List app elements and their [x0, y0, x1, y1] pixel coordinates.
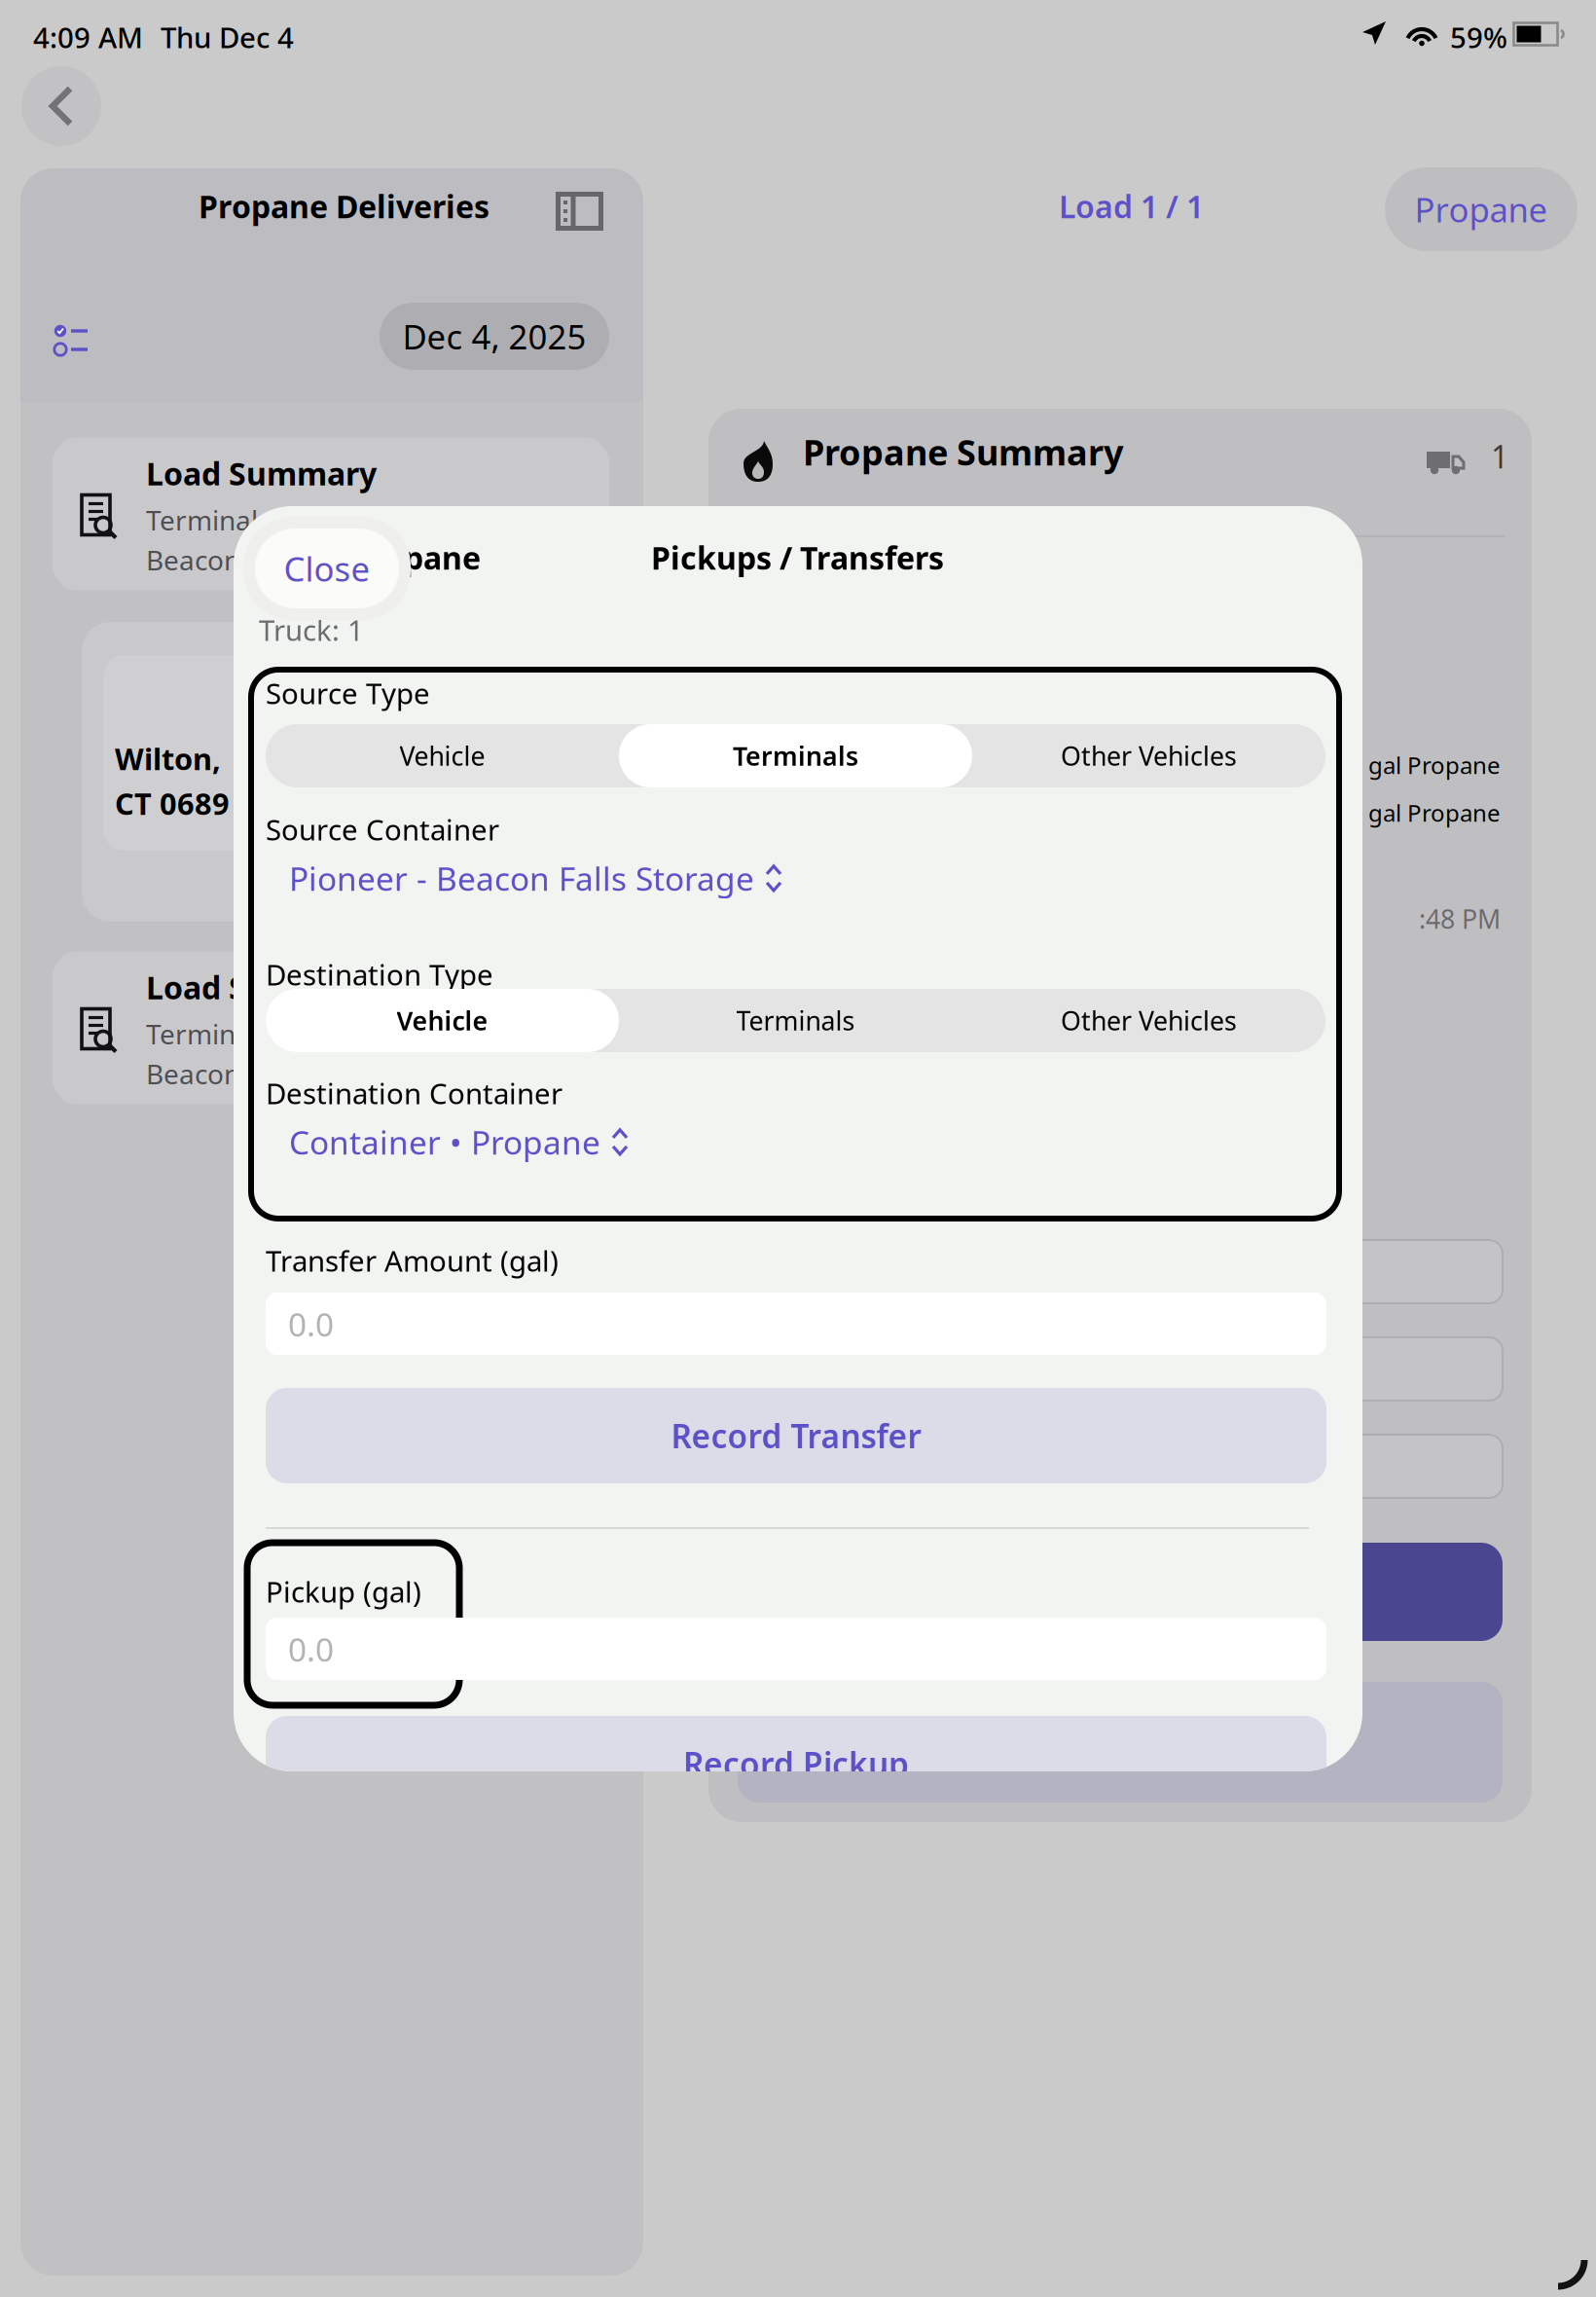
staticText: 59%: [1450, 18, 1507, 56]
staticText: Other Vehicles: [1061, 739, 1237, 773]
staticText: Container • Propane: [289, 1120, 600, 1164]
button[interactable]: Record Pickup: [266, 1716, 1326, 1811]
staticText: Record Transfer: [671, 1414, 921, 1457]
button[interactable]: Container • Propane: [289, 1120, 629, 1164]
button[interactable]: Other Vehicles: [972, 724, 1325, 787]
staticText: Propane Summary: [803, 429, 1124, 475]
staticText: Source Container: [266, 810, 499, 848]
staticText: Beacon: [146, 542, 240, 578]
staticText: Load Summary: [146, 453, 377, 494]
button[interactable]: Propane: [1385, 167, 1578, 251]
staticText: 1: [1491, 436, 1508, 477]
button[interactable]: Vehicle: [266, 989, 619, 1052]
button[interactable]: Other Vehicles: [972, 989, 1325, 1052]
button[interactable]: Load S: [53, 951, 609, 1104]
button[interactable]: Vehicle: [266, 724, 619, 787]
button[interactable]: Load Summary: [53, 438, 609, 590]
button[interactable]: Close: [255, 529, 399, 608]
staticText: Beacon: [146, 1056, 240, 1092]
staticText: Terminals: [733, 739, 858, 773]
staticText: gal Propane: [1368, 750, 1501, 781]
staticText: 0.0: [288, 1302, 334, 1346]
staticText: Propane Deliveries: [199, 186, 490, 227]
staticText: Other Vehicles: [1061, 1003, 1237, 1038]
staticText: gal Propane: [1368, 797, 1501, 828]
button[interactable]: Dec 4, 2025: [380, 303, 609, 370]
staticText: Load 1 / 1: [1059, 186, 1204, 227]
staticText: Terminals: [736, 1003, 855, 1038]
staticText: Terminal: B: [146, 502, 290, 538]
staticText: 4:09 AM: [33, 18, 143, 56]
button[interactable]: Terminals: [619, 989, 972, 1052]
button[interactable]: Pioneer - Beacon Falls Storage: [289, 857, 782, 900]
staticText: Thu Dec 4: [161, 18, 294, 56]
staticText: Close: [284, 546, 370, 591]
staticText: Load S: [146, 967, 246, 1008]
staticText: Source Type: [266, 674, 430, 712]
staticText: CT 0689: [115, 784, 230, 823]
staticText: Destination Type: [266, 955, 493, 993]
staticText: Destination Container: [266, 1074, 562, 1112]
staticText: Pickups / Transfers: [651, 537, 944, 578]
staticText: Wilton,: [115, 739, 221, 778]
staticText: Vehicle: [397, 1003, 488, 1038]
staticText: Terminal: [146, 1016, 258, 1052]
staticText: Dec 4, 2025: [402, 314, 586, 359]
staticText: Pioneer - Beacon Falls Storage: [289, 857, 754, 900]
button[interactable]: Toggle sidebar: [556, 192, 603, 231]
staticText: Vehicle: [399, 739, 485, 773]
staticText: Record Pickup: [683, 1742, 909, 1785]
button[interactable]: Record Transfer: [266, 1388, 1326, 1483]
staticText: Pickup (gal): [266, 1572, 421, 1610]
button[interactable]: Back: [21, 66, 101, 146]
staticText: 0.0: [288, 1628, 334, 1671]
staticText: pane: [404, 537, 481, 578]
staticText: Truck: 1: [259, 611, 364, 649]
staticText: Propane: [1415, 187, 1548, 232]
staticText: Transfer Amount (gal): [266, 1241, 559, 1279]
staticText: :48 PM: [1419, 902, 1501, 936]
button[interactable]: Primary action: [738, 1543, 1503, 1641]
button[interactable]: Terminals: [619, 724, 972, 787]
